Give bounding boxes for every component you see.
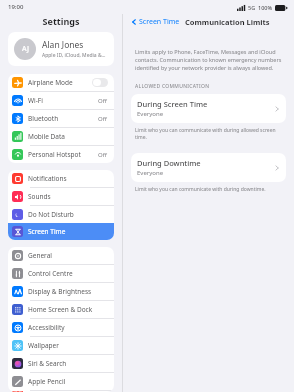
staticText: Bluetooth: [28, 114, 98, 123]
button[interactable]: Mobile Data: [8, 128, 114, 145]
staticText: Off: [98, 97, 107, 105]
staticText: Mobile Data: [28, 132, 110, 141]
button[interactable]: Home Screen & Dock: [8, 301, 114, 318]
staticText: Apple Pencil: [28, 377, 110, 386]
staticText: During Downtime: [137, 158, 201, 168]
staticText: General: [28, 251, 110, 260]
button[interactable]: Sounds: [8, 188, 114, 205]
button[interactable]: Wi-Fi: [8, 92, 114, 109]
button[interactable]: Siri & Search: [8, 355, 114, 372]
button[interactable]: Back to Screen Time: [131, 17, 180, 27]
button[interactable]: Display & Brightness: [8, 283, 114, 300]
staticText: Off: [98, 115, 107, 123]
staticText: 5G: [248, 4, 256, 11]
staticText: Off: [98, 151, 107, 159]
button[interactable]: Do Not Disturb: [8, 206, 114, 223]
staticText: Screen Time: [28, 227, 110, 236]
button[interactable]: Apple Pencil: [8, 373, 114, 390]
button[interactable]: AJ: [8, 32, 114, 66]
staticText: Do Not Disturb: [28, 210, 110, 219]
staticText: Home Screen & Dock: [28, 305, 110, 314]
button[interactable]: Airplane Mode: [8, 74, 114, 91]
button[interactable]: Bluetooth: [8, 110, 114, 127]
staticText: Limit who you can communicate with durin…: [135, 127, 282, 141]
staticText: Communication Limits: [185, 17, 270, 27]
staticText: Limits apply to Phone, FaceTime, Message…: [135, 48, 282, 72]
staticText: Wi-Fi: [28, 96, 98, 105]
staticText: During Screen Time: [137, 99, 208, 109]
staticText: Screen Time: [139, 17, 180, 27]
staticText: Accessibility: [28, 323, 110, 332]
button[interactable]: During Screen Time: [131, 94, 286, 123]
staticText: Settings: [0, 15, 122, 27]
staticText: Personal Hotspot: [28, 150, 98, 159]
staticText: Apple ID, iCloud, Media &…: [42, 52, 106, 59]
staticText: Siri & Search: [28, 359, 110, 368]
button[interactable]: Control Centre: [8, 265, 114, 282]
staticText: Alan Jones: [42, 39, 84, 51]
button[interactable]: Touch ID & Passcode: [8, 391, 114, 392]
staticText: Limit who you can communicate with durin…: [135, 186, 266, 193]
button[interactable]: Wallpaper: [8, 337, 114, 354]
staticText: Everyone: [137, 110, 164, 118]
staticText: Sounds: [28, 192, 110, 201]
staticText: Display & Brightness: [28, 287, 110, 296]
button[interactable]: Accessibility: [8, 319, 114, 336]
button[interactable]: Screen Time: [8, 223, 114, 240]
staticText: Control Centre: [28, 269, 110, 278]
button[interactable]: General: [8, 247, 114, 264]
staticText: Notifications: [28, 174, 110, 183]
button[interactable]: Notifications: [8, 170, 114, 187]
button[interactable]: During Downtime: [131, 153, 286, 182]
staticText: Wallpaper: [28, 341, 110, 350]
staticText: ALLOWED COMMUNICATION: [135, 83, 210, 90]
staticText: AJ: [22, 44, 29, 54]
staticText: Airplane Mode: [28, 78, 92, 87]
staticText: Everyone: [137, 169, 164, 177]
button[interactable]: Personal Hotspot: [8, 146, 114, 163]
staticText: 19:00: [8, 3, 24, 11]
staticText: 100%: [258, 4, 273, 11]
